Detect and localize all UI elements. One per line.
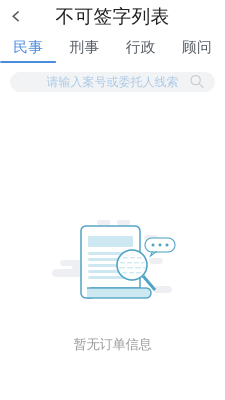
button[interactable]: 行政: [112, 33, 169, 63]
staticText: 请输入案号或委托人线索: [46, 75, 178, 89]
button[interactable]: 请输入案号或委托人线索: [10, 72, 215, 92]
staticText: 暂无订单信息: [73, 336, 151, 352]
button[interactable]: 刑事: [56, 33, 112, 63]
staticText: 行政: [126, 38, 156, 56]
button[interactable]: Back: [0, 0, 32, 32]
button[interactable]: 顾问: [169, 33, 225, 63]
staticText: 民事: [13, 38, 43, 56]
staticText: 顾问: [182, 38, 212, 56]
staticText: 不可签字列表: [55, 5, 169, 28]
button[interactable]: 民事: [0, 33, 56, 63]
staticText: 刑事: [69, 38, 99, 56]
